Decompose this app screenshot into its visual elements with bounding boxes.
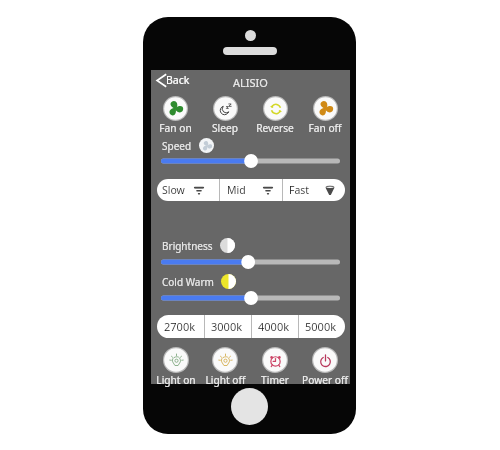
button[interactable]: Home (231, 388, 268, 425)
staticText: Fan off (308, 121, 342, 135)
staticText: Brightness (162, 239, 213, 253)
staticText: Light on (156, 373, 196, 387)
staticText: Light off (205, 373, 246, 387)
staticText: Fan on (159, 121, 192, 135)
button[interactable]: Reverse (250, 96, 300, 135)
button[interactable]: Slow (157, 179, 219, 201)
button[interactable]: Back (156, 73, 190, 87)
staticText: 5000k (305, 319, 337, 334)
staticText: Slow (162, 183, 185, 197)
button[interactable]: Fan on (151, 96, 200, 135)
staticText: Fast (289, 183, 310, 197)
button[interactable]: Light on (151, 347, 200, 387)
staticText: 4000k (258, 319, 290, 334)
staticText: Back (166, 73, 190, 87)
staticText: Reverse (256, 121, 294, 135)
staticText: Mid (227, 183, 246, 197)
button[interactable] (161, 255, 340, 269)
staticText: Speed (162, 139, 192, 153)
staticText: Sleep (212, 121, 238, 135)
button[interactable] (161, 154, 340, 168)
button[interactable]: Power off (300, 347, 350, 387)
button[interactable]: 4000k (252, 315, 298, 338)
staticText: ALISIO (233, 75, 268, 90)
button[interactable]: 3000k (205, 315, 251, 338)
button[interactable]: Sleep (200, 96, 250, 135)
button[interactable]: Fast (283, 179, 345, 201)
staticText: 2700k (164, 319, 196, 334)
staticText: Power off (302, 373, 348, 387)
button[interactable]: Light off (200, 347, 250, 387)
staticText: Timer (261, 373, 289, 387)
button[interactable]: Fan off (300, 96, 350, 135)
button[interactable]: 2700k (157, 315, 204, 338)
staticText: 3000k (211, 319, 243, 334)
button[interactable]: 5000k (299, 315, 345, 338)
button[interactable]: Timer (250, 347, 300, 387)
button[interactable] (161, 291, 340, 305)
staticText: Cold Warm (162, 275, 214, 289)
button[interactable]: Mid (220, 179, 282, 201)
